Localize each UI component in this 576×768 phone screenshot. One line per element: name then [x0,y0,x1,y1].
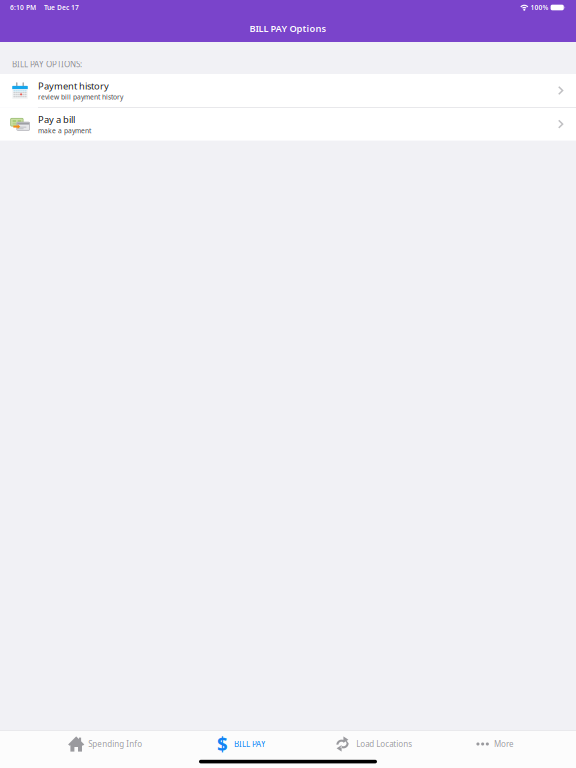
button[interactable]: Load Locations [336,731,412,757]
staticText: BILL PAY Options [249,22,326,35]
staticText: Pay a bill [38,113,75,126]
staticText: Payment history [38,80,109,92]
staticText: $ [217,732,228,756]
staticText: BILL PAY OPTIONS: [12,59,82,69]
button[interactable]: Payment history [0,74,576,107]
staticText: Tue Dec 17 [44,3,79,12]
button[interactable]: Pay a bill [0,108,576,141]
staticText: Load Locations [356,739,412,749]
staticText: Spending Info [88,739,142,749]
staticText: review bill payment history [38,92,123,101]
staticText: BILL PAY [234,739,266,749]
staticText: 6:10 PM [10,3,36,12]
staticText: More [494,739,514,749]
button[interactable]: More [476,731,514,757]
button[interactable]: Spending Info [68,731,142,757]
staticText: 100% [531,3,549,12]
button[interactable]: $ [217,731,266,757]
staticText: make a payment [38,126,91,135]
